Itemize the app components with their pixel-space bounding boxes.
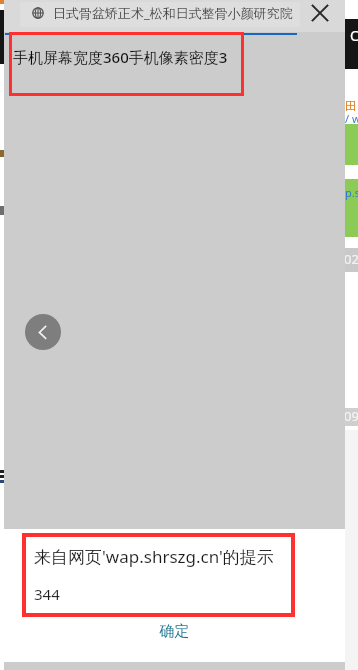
staticText: 田 xyxy=(345,98,357,113)
button[interactable]: 确定 xyxy=(4,617,345,647)
button[interactable]: Back xyxy=(25,314,61,350)
staticText: 02 xyxy=(344,250,358,268)
staticText: 日式骨盆矫正术_松和日式整骨小颜研究院 xyxy=(53,4,293,22)
staticText: 来自网页'wap.shrszg.cn'的提示 xyxy=(34,545,274,568)
button[interactable]: Site information xyxy=(28,3,48,23)
button[interactable]: Close xyxy=(306,0,334,26)
staticText: p.s xyxy=(345,185,358,200)
staticText: C xyxy=(350,26,358,45)
staticText: 09 xyxy=(344,407,358,425)
staticText: 确定 xyxy=(4,622,345,652)
staticText: 手机屏幕宽度360手机像素密度3 xyxy=(13,47,228,67)
staticText: / w xyxy=(345,111,358,126)
staticText: 344 xyxy=(34,584,60,604)
